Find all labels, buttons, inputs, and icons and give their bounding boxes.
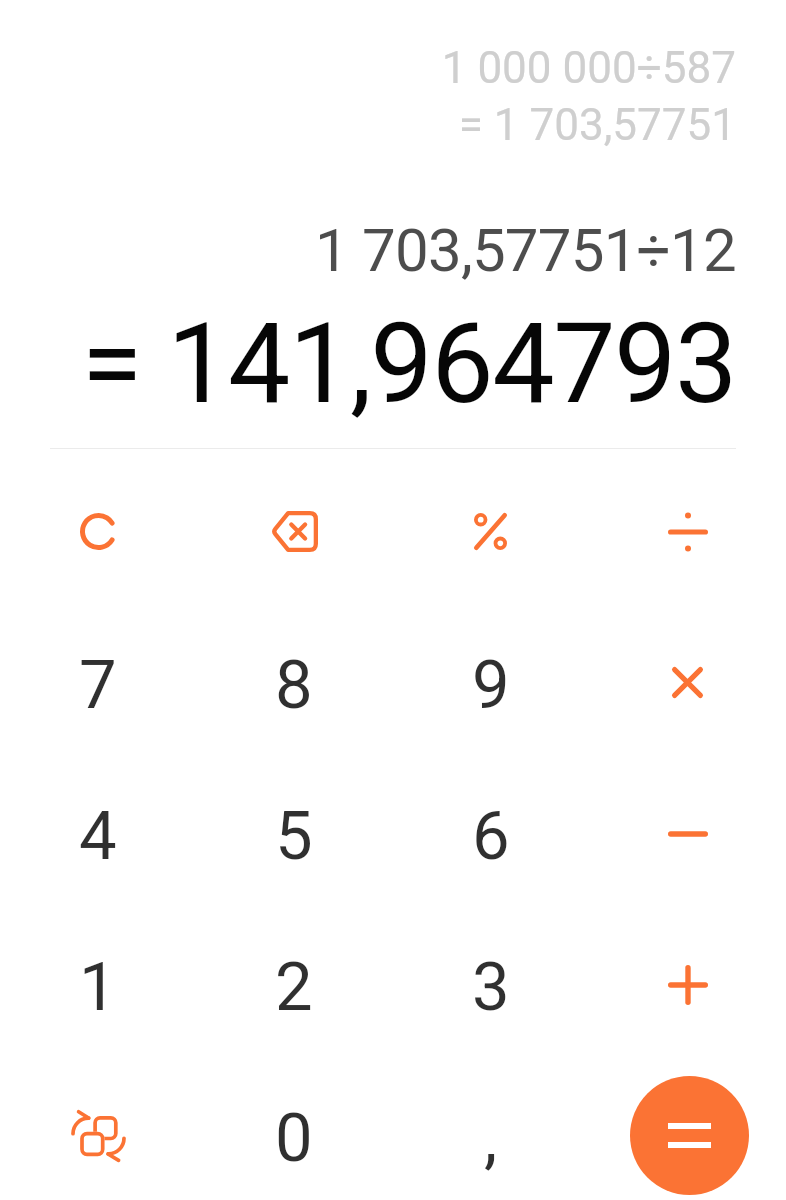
staticText: 1: [79, 948, 117, 1027]
staticText: 5: [275, 797, 313, 876]
button[interactable]: 1: [0, 909, 196, 1060]
button[interactable]: ,: [392, 1060, 589, 1200]
button[interactable]: Multiply: [589, 607, 786, 758]
button[interactable]: Divide: [589, 456, 786, 607]
staticText: 4: [79, 797, 117, 876]
staticText: 3: [472, 948, 510, 1027]
staticText: 6: [472, 797, 510, 876]
button[interactable]: Percent: [392, 456, 589, 607]
button[interactable]: 9: [392, 607, 589, 758]
staticText: 2: [275, 948, 313, 1027]
staticText: = 141,964793: [81, 299, 736, 429]
button[interactable]: Backspace: [196, 456, 392, 607]
button[interactable]: 3: [392, 909, 589, 1060]
staticText: 1 000 000÷587: [441, 42, 736, 94]
staticText: 9: [472, 646, 510, 725]
button[interactable]: Clear: [0, 456, 196, 607]
staticText: = 1 703,57751: [458, 99, 736, 151]
staticText: 7: [79, 646, 117, 725]
staticText: 8: [275, 646, 313, 725]
button[interactable]: Unit converter: [0, 1060, 196, 1200]
button[interactable]: Minus: [589, 758, 786, 909]
button[interactable]: 6: [392, 758, 589, 909]
staticText: 0: [275, 1099, 313, 1178]
button[interactable]: 4: [0, 758, 196, 909]
button[interactable]: 7: [0, 607, 196, 758]
button[interactable]: 8: [196, 607, 392, 758]
button[interactable]: 5: [196, 758, 392, 909]
staticText: 1 703,57751÷12: [315, 215, 736, 285]
staticText: ,: [484, 1099, 498, 1178]
button[interactable]: 2: [196, 909, 392, 1060]
button[interactable]: 0: [196, 1060, 392, 1200]
button[interactable]: Equals: [630, 1076, 749, 1195]
button[interactable]: Plus: [589, 909, 786, 1060]
